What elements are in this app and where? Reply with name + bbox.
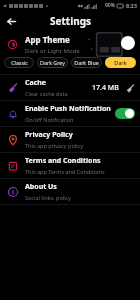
staticText: This app Terms and Conditions [25, 168, 105, 175]
button[interactable]: Cache [0, 75, 140, 100]
button[interactable]: Toggle push notification [115, 108, 135, 119]
staticText: Clear cache data [25, 90, 68, 97]
button[interactable]: Back [3, 13, 19, 29]
staticText: About Us [25, 182, 57, 192]
staticText: Enable Push Notification [25, 104, 111, 114]
button[interactable]: Enable Push Notification [0, 101, 140, 126]
staticText: Cache [25, 78, 47, 88]
staticText: Privacy Policy [25, 130, 73, 140]
staticText: Terms and Conditions [25, 156, 101, 166]
button[interactable]: Dark [105, 57, 136, 68]
staticText: 90% [105, 2, 115, 9]
staticText: 17.4 MB [92, 83, 119, 93]
button[interactable]: Dark Grey [37, 57, 68, 68]
staticText: On/off Notification [25, 116, 74, 123]
staticText: Dark [114, 59, 127, 66]
staticText: Social links, policy [25, 194, 72, 201]
button[interactable]: App Theme [0, 31, 140, 57]
button[interactable]: Terms and Conditions [0, 153, 140, 178]
staticText: This app privacy policy [25, 142, 84, 149]
staticText: Dark or Light Mode [25, 47, 80, 55]
button[interactable]: Classic [4, 57, 34, 68]
staticText: Classic [11, 59, 28, 66]
staticText: Dark Grey [40, 59, 65, 66]
button[interactable]: Dark Blue [71, 57, 102, 68]
staticText: Settings [50, 14, 91, 28]
button[interactable]: Privacy Policy [0, 127, 140, 152]
staticText: App Theme [25, 34, 70, 45]
staticText: 8:23 [126, 2, 137, 9]
staticText: Dark Blue [74, 59, 99, 66]
button[interactable]: About Us [0, 179, 140, 204]
